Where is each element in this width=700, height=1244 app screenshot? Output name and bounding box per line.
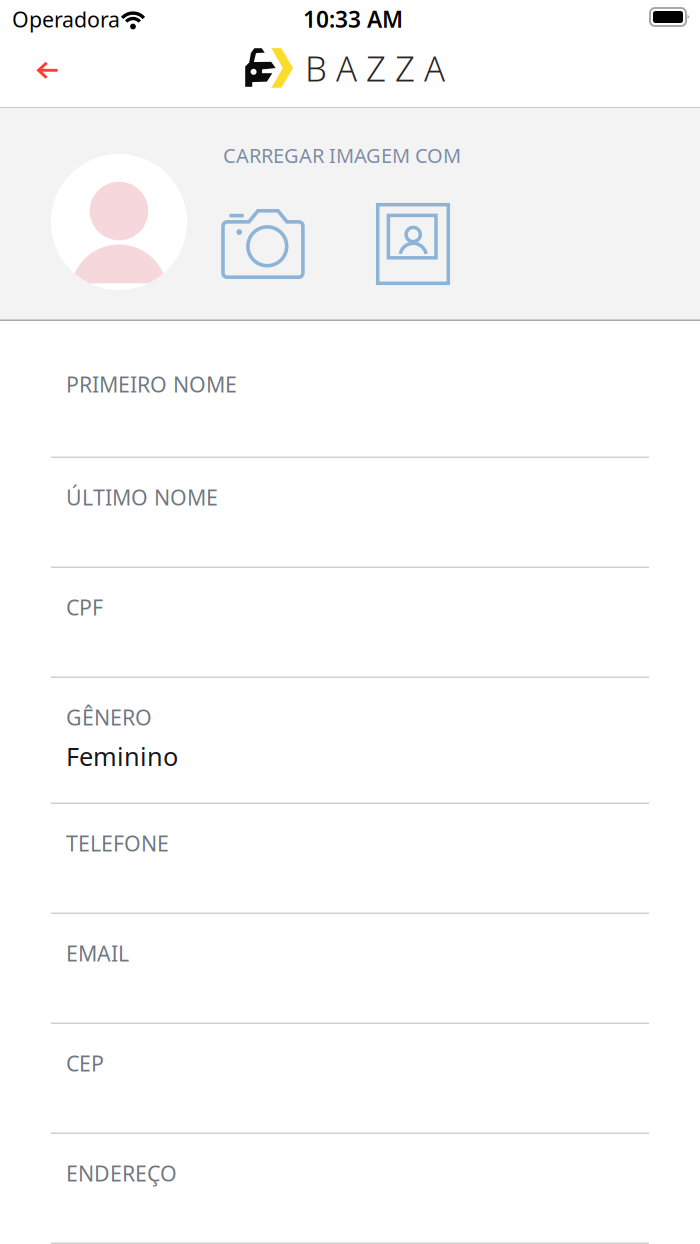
staticText: TELEFONE — [66, 829, 169, 857]
staticText: B A Z Z A — [305, 45, 445, 91]
staticText: Operadora — [12, 5, 120, 33]
button[interactable]: Choose from library — [376, 203, 450, 285]
staticText: CEP — [66, 1049, 104, 1077]
staticText: CARREGAR IMAGEM COM — [223, 142, 461, 169]
button[interactable]: EMAIL — [0, 914, 700, 1024]
button[interactable]: CEP — [0, 1024, 700, 1134]
button[interactable]: Take photo — [223, 208, 309, 279]
staticText: ENDEREÇO — [66, 1159, 177, 1187]
staticText: 10:33 AM — [303, 4, 403, 34]
staticText: CPF — [66, 593, 103, 621]
button[interactable]: ENDEREÇO — [0, 1134, 700, 1244]
staticText: GÊNERO — [66, 703, 152, 731]
button[interactable]: PRIMEIRO NOME — [0, 321, 700, 458]
button[interactable]: TELEFONE — [0, 804, 700, 914]
staticText: PRIMEIRO NOME — [66, 370, 237, 398]
button[interactable]: Back — [16, 49, 79, 92]
staticText: Feminino — [66, 739, 178, 773]
button[interactable]: ÚLTIMO NOME — [0, 458, 700, 568]
staticText: EMAIL — [66, 939, 129, 967]
button[interactable]: GÊNERO — [0, 678, 700, 804]
staticText: ÚLTIMO NOME — [66, 483, 218, 511]
button[interactable]: CPF — [0, 568, 700, 678]
